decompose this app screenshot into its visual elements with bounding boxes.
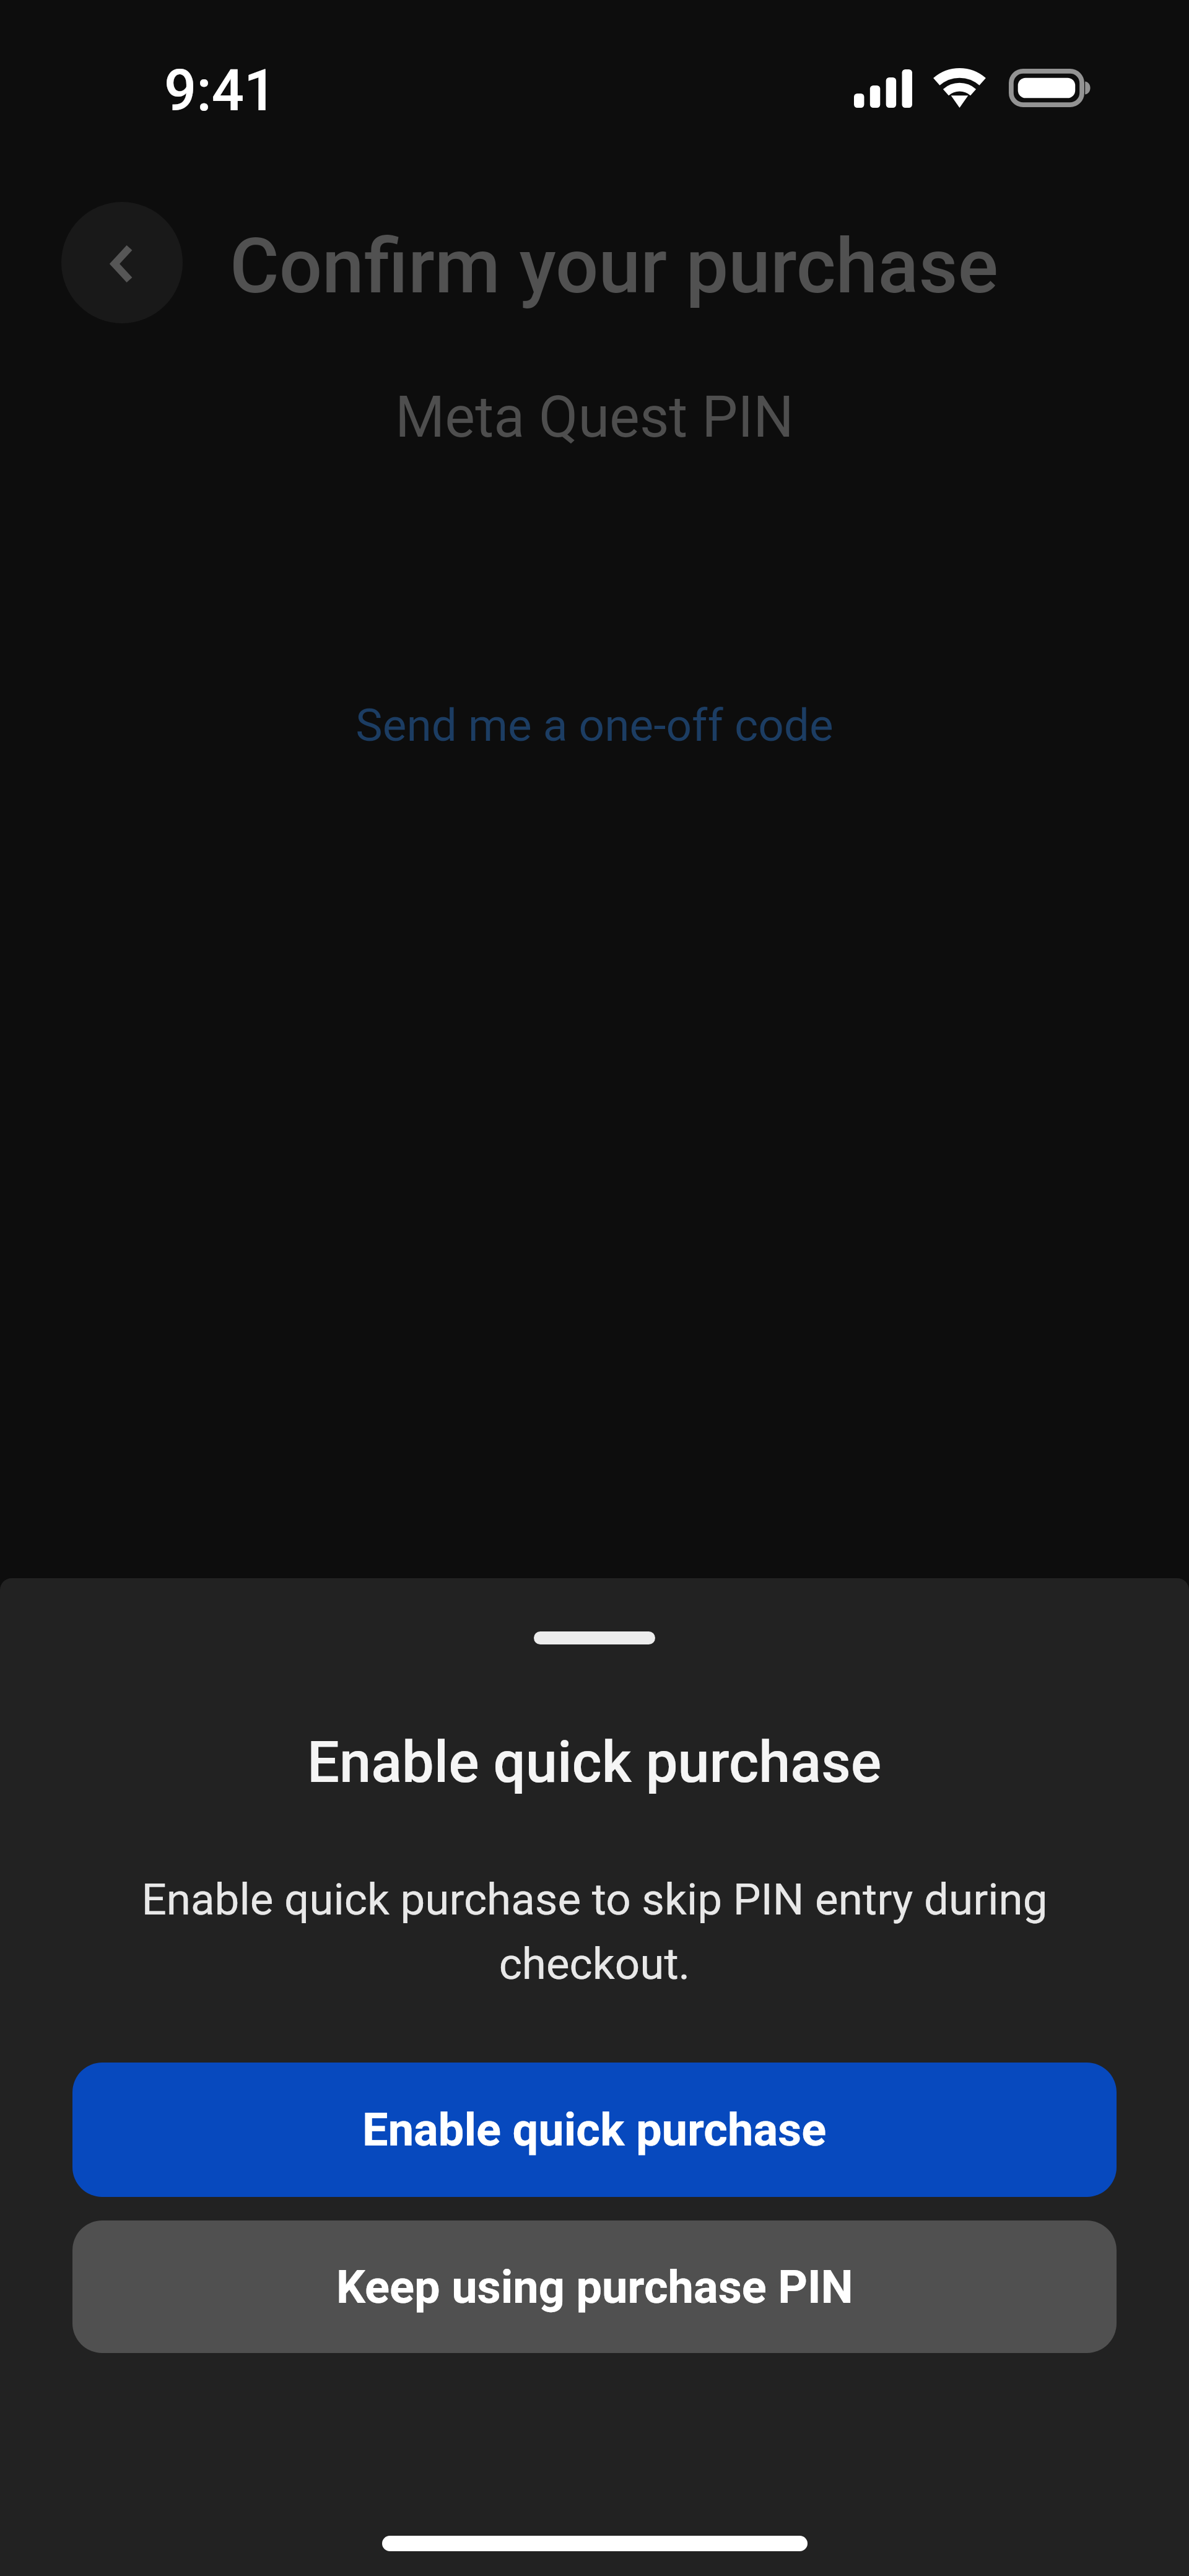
button[interactable]: Back xyxy=(61,202,183,323)
button[interactable]: Keep using purchase PIN xyxy=(72,2220,1117,2353)
staticText: Confirm your purchase xyxy=(230,222,998,311)
button[interactable]: Send me a one-off code xyxy=(347,694,842,756)
staticText: Enable quick purchase xyxy=(362,2103,827,2157)
staticText: Enable quick purchase xyxy=(307,1729,882,1796)
button[interactable]: Enable quick purchase xyxy=(72,2063,1117,2197)
staticText: Keep using purchase PIN xyxy=(336,2260,853,2314)
staticText: Enable quick purchase to skip PIN entry … xyxy=(111,1874,1078,1990)
staticText: 9:41 xyxy=(164,58,277,124)
staticText: Meta Quest PIN xyxy=(0,384,1189,451)
staticText: Send me a one-off code xyxy=(355,699,834,752)
